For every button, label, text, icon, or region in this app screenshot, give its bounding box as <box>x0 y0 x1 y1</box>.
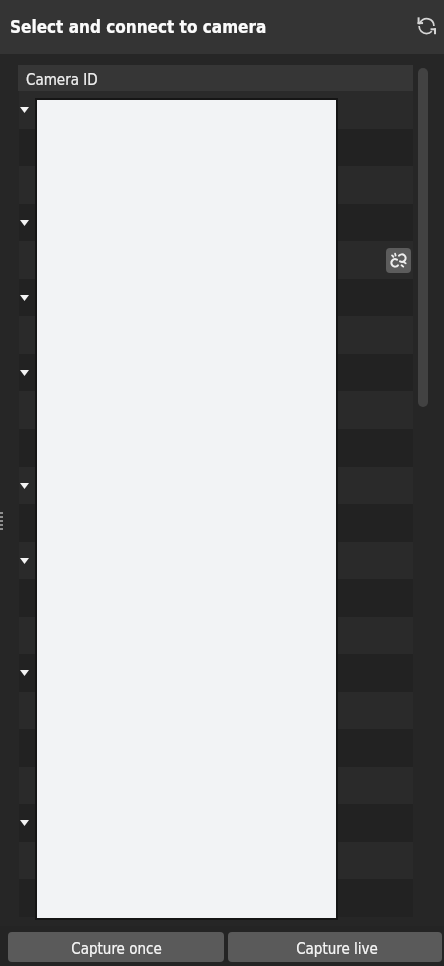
button[interactable]: Camera ID <box>18 65 413 91</box>
button[interactable] <box>19 467 413 505</box>
button[interactable] <box>19 504 413 542</box>
button[interactable] <box>19 579 413 617</box>
button[interactable] <box>19 654 413 692</box>
button[interactable] <box>19 804 413 842</box>
button[interactable] <box>19 729 413 767</box>
button[interactable] <box>19 429 413 467</box>
button[interactable] <box>19 166 413 204</box>
button[interactable] <box>19 842 413 880</box>
button[interactable]: Refresh camera list <box>417 17 436 36</box>
button[interactable] <box>19 542 413 580</box>
staticText: Capture live <box>296 940 378 957</box>
button[interactable] <box>19 316 413 354</box>
staticText: Select and connect to camera <box>10 17 267 37</box>
staticText: Camera ID <box>26 71 98 88</box>
button[interactable]: Disconnect camera <box>19 241 413 279</box>
button[interactable] <box>19 354 413 392</box>
button[interactable]: Disconnect camera <box>386 248 411 273</box>
button[interactable] <box>19 879 413 917</box>
button[interactable] <box>19 204 413 242</box>
staticText: Capture once <box>71 940 162 957</box>
button[interactable] <box>19 391 413 429</box>
button[interactable] <box>19 91 413 129</box>
button[interactable] <box>19 129 413 167</box>
button[interactable] <box>19 767 413 805</box>
button[interactable] <box>19 692 413 730</box>
button[interactable]: Capture live <box>228 932 442 962</box>
button[interactable]: Capture once <box>8 932 224 962</box>
button[interactable] <box>19 279 413 317</box>
button[interactable] <box>19 617 413 655</box>
